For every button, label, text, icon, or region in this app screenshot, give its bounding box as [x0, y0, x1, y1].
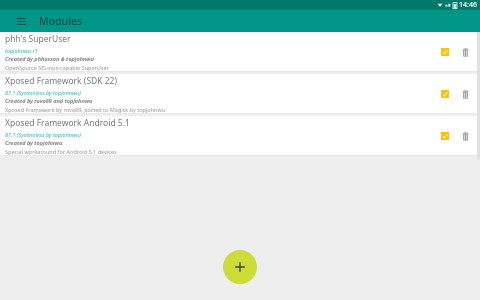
button[interactable]: Add module	[223, 250, 257, 284]
staticText: 14:46	[459, 0, 477, 10]
button[interactable]: Delete module	[457, 44, 473, 60]
button[interactable]: Delete module	[457, 86, 473, 102]
button[interactable]: Toggle module enabled	[437, 128, 453, 144]
staticText: Xposed Framework Android 5.1	[5, 117, 130, 129]
staticText: Created by topjohnwu	[5, 139, 63, 146]
staticText: Xposed Framework (SDK 22)	[5, 75, 117, 87]
button[interactable]: Toggle module enabled	[437, 44, 453, 60]
button[interactable]: Open navigation menu	[12, 12, 30, 30]
staticText: topjohnwu r1	[5, 47, 38, 54]
button[interactable]: Xposed Framework (SDK 22)	[0, 74, 477, 114]
staticText: Xposed Framework by rovo89, ported to Ma…	[5, 106, 166, 113]
staticText: 87.1 (Systemless by topjohnwu)	[5, 131, 81, 138]
staticText: Created by rovo89 and topjohnwu	[5, 97, 93, 104]
staticText: Modules	[39, 14, 83, 28]
button[interactable]: phh's SuperUser	[0, 32, 477, 72]
staticText: 87.1 (Systemless by topjohnwu)	[5, 89, 81, 96]
staticText: OpenSource SELinux-capable SuperUser	[5, 64, 109, 71]
staticText: Created by phhusson & topjohnwu	[5, 55, 95, 62]
staticText: Special workaround for Android 5.1 devic…	[5, 148, 117, 155]
button[interactable]: Toggle module enabled	[437, 86, 453, 102]
staticText: phh's SuperUser	[5, 33, 71, 45]
button[interactable]: Delete module	[457, 128, 473, 144]
button[interactable]: Xposed Framework Android 5.1	[0, 116, 477, 156]
